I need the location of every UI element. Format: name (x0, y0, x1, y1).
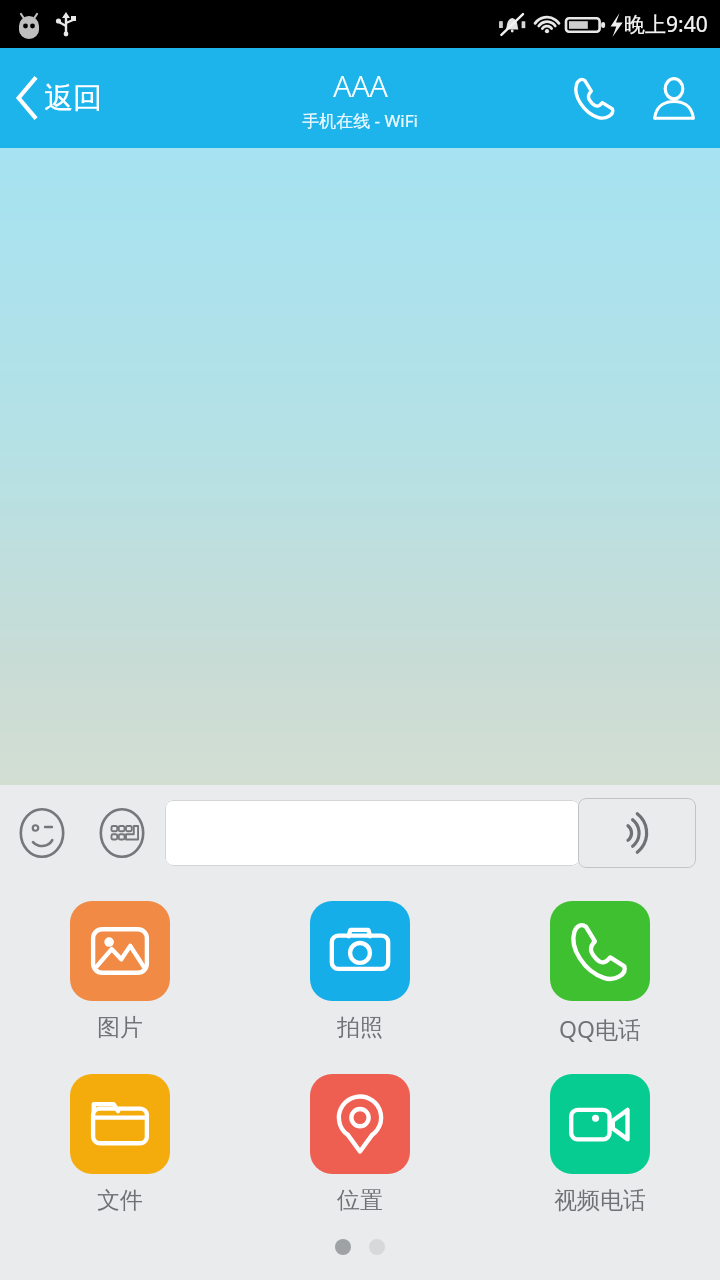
button[interactable] (165, 800, 580, 866)
staticText: 位置 (337, 1186, 383, 1215)
button[interactable]: Keyboard (94, 805, 150, 861)
staticText: QQ电话 (559, 1013, 641, 1044)
button[interactable]: 拍照 (270, 897, 450, 1046)
staticText: 返回 (44, 80, 102, 117)
button[interactable]: 位置 (270, 1070, 450, 1219)
other: Battery (566, 14, 606, 36)
other: Silent (499, 12, 529, 38)
other: WiFi (533, 13, 561, 37)
staticText: 视频电话 (554, 1186, 646, 1215)
staticText: 拍照 (337, 1013, 383, 1042)
button[interactable]: 返回 (0, 71, 116, 125)
staticText: 晚上9:40 (624, 10, 708, 39)
button[interactable]: QQ电话 (510, 897, 690, 1048)
staticText: 文件 (97, 1186, 143, 1215)
staticText: 图片 (97, 1013, 143, 1042)
button[interactable]: Voice message (578, 798, 696, 868)
staticText: AAA (333, 65, 388, 106)
button[interactable]: 图片 (30, 897, 210, 1046)
staticText: 手机在线 - WiFi (302, 109, 418, 132)
button[interactable]: 视频电话 (510, 1070, 690, 1219)
button[interactable]: Profile (642, 66, 706, 130)
button[interactable]: Call (562, 65, 628, 131)
button[interactable]: 文件 (30, 1070, 210, 1219)
button[interactable]: Emoji (14, 805, 70, 861)
